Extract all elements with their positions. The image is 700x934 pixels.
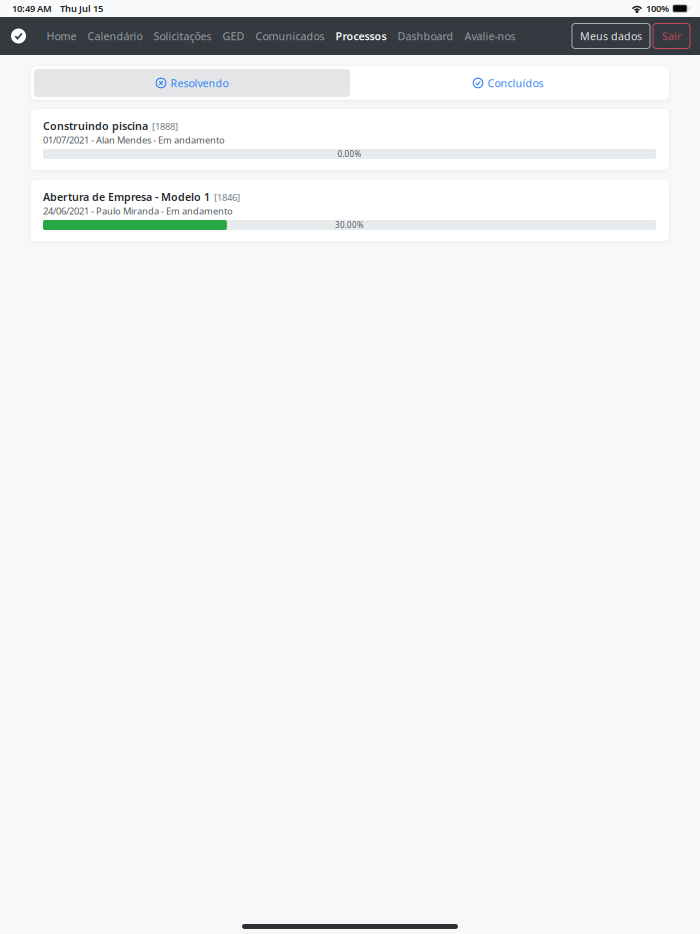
staticText: Solicitações — [153, 29, 211, 43]
staticText: 100% — [646, 2, 669, 15]
button[interactable]: Dashboard — [392, 20, 459, 52]
staticText: Comunicados — [255, 29, 324, 43]
staticText: Construindo piscina — [43, 119, 148, 133]
staticText: Home — [46, 29, 76, 43]
button[interactable]: Solicitações — [148, 20, 217, 52]
staticText: 24/06/2021 - Paulo Miranda - Em andament… — [43, 205, 233, 217]
staticText: Resolvendo — [170, 76, 228, 90]
staticText: 01/07/2021 - Alan Mendes - Em andamento — [43, 134, 225, 146]
staticText: [1888] — [152, 120, 178, 133]
button[interactable]: Processos — [330, 20, 392, 52]
button[interactable]: Avalie-nos — [459, 20, 521, 52]
button[interactable]: Comunicados — [250, 20, 330, 52]
staticText: Abertura de Empresa - Modelo 1 — [43, 190, 210, 204]
button[interactable]: Resolvendo — [34, 69, 350, 97]
button[interactable]: GED — [217, 20, 250, 52]
button[interactable]: Calendário — [82, 20, 148, 52]
staticText: Processos — [335, 29, 386, 43]
staticText: 30.00% — [335, 220, 364, 230]
staticText: 0.00% — [337, 149, 361, 159]
staticText: Thu Jul 15 — [60, 2, 103, 15]
button[interactable]: Abertura de Empresa - Modelo 1 — [31, 180, 669, 241]
staticText: Calendário — [87, 29, 142, 43]
staticText: [1846] — [214, 191, 240, 204]
button[interactable]: Meus dados — [572, 23, 650, 48]
staticText: GED — [222, 29, 244, 43]
staticText: Meus dados — [580, 29, 642, 43]
button[interactable]: Home — [41, 20, 82, 52]
button[interactable]: Início — [0, 28, 32, 43]
button[interactable]: Sair — [653, 23, 690, 48]
staticText: Avalie-nos — [464, 29, 515, 43]
button[interactable]: Construindo piscina — [31, 109, 669, 170]
staticText: Sair — [662, 29, 681, 43]
staticText: Concluídos — [487, 76, 543, 90]
button[interactable]: Concluídos — [350, 69, 666, 97]
staticText: 10:49 AM — [12, 2, 52, 15]
staticText: Dashboard — [397, 29, 453, 43]
